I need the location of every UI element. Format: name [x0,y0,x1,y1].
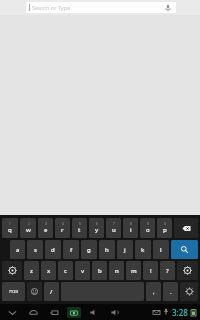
button[interactable]: g [81,240,97,259]
staticText: 6 [96,222,98,226]
button[interactable]: Shift [177,261,198,280]
staticText: i [130,226,132,234]
staticText: c [64,267,67,275]
button[interactable]: Home [27,306,40,318]
staticText: x [47,267,51,275]
button[interactable]: Settings [180,282,198,301]
staticText: k [141,246,145,254]
button[interactable]: Backspace [174,218,198,238]
staticText: n [115,267,119,275]
button[interactable]: 5 [72,218,87,238]
button[interactable]: 7 [106,218,121,238]
button[interactable]: Back [6,306,19,318]
button[interactable]: c [58,261,73,280]
staticText: , [153,288,155,296]
staticText: Search or Type [32,4,71,11]
button[interactable]: 2 [20,218,36,238]
button[interactable]: a [10,240,25,259]
staticText: 0 [164,222,166,226]
staticText: y [95,226,99,234]
button[interactable]: l [153,240,169,259]
button[interactable]: 0 [157,218,172,238]
button[interactable]: 9 [140,218,155,238]
staticText: v [81,267,85,275]
button[interactable]: Screenshot [67,307,81,318]
staticText: 9 [147,222,149,226]
staticText: ?123 [9,289,19,295]
staticText: 4 [62,222,64,226]
button[interactable]: ?123 [2,282,25,301]
button[interactable]: / [44,282,59,301]
button[interactable]: , [146,282,161,301]
button[interactable]: Voice search [162,2,173,13]
button[interactable]: h [99,240,115,259]
staticText: j [124,246,126,254]
staticText: l [160,246,162,254]
staticText: t [78,226,81,234]
button[interactable]: x [41,261,56,280]
staticText: q [8,226,12,234]
button[interactable]: v [75,261,90,280]
button[interactable]: Volume up [108,306,121,318]
button[interactable]: Search [171,240,198,259]
staticText: m [131,267,137,275]
staticText: 3:28 [172,307,188,318]
staticText: d [51,246,55,254]
button[interactable]: Recents [48,306,61,318]
button[interactable]: k [135,240,151,259]
staticText: s [34,246,37,254]
staticText: f [70,246,73,254]
button[interactable]: s [27,240,43,259]
staticText: h [105,246,109,254]
button[interactable]: Shift [2,261,22,280]
button[interactable]: n [109,261,124,280]
button[interactable]: d [45,240,61,259]
staticText: ? [166,267,169,275]
button[interactable]: ! [143,261,158,280]
staticText: 1 [9,222,11,226]
staticText: o [146,226,150,234]
staticText: 7 [113,222,115,226]
staticText: ! [150,267,152,275]
staticText: 8 [130,222,132,226]
staticText: . [170,288,172,296]
button[interactable]: Emoji [27,282,42,301]
button[interactable]: f [63,240,79,259]
button[interactable]: j [117,240,133,259]
staticText: 3 [45,222,47,226]
button[interactable]: 6 [89,218,104,238]
button[interactable]: . [163,282,178,301]
button[interactable]: b [92,261,107,280]
staticText: g [87,246,91,254]
button[interactable]: z [24,261,39,280]
staticText: a [16,246,20,254]
staticText: / [50,288,53,296]
staticText: u [112,226,116,234]
button[interactable]: ? [160,261,175,280]
button[interactable]: Volume down [87,306,100,318]
staticText: w [26,226,31,234]
button[interactable]: m [126,261,141,280]
button[interactable]: 8 [123,218,138,238]
button[interactable]: Search or Type [26,2,176,13]
staticText: r [61,226,64,234]
staticText: 2 [28,222,30,226]
button[interactable]: 1 [2,218,18,238]
staticText: b [98,267,102,275]
staticText: 5 [79,222,81,226]
staticText: z [30,267,33,275]
button[interactable]: 3 [38,218,53,238]
staticText: e [44,226,48,234]
button[interactable]: 4 [55,218,70,238]
staticText: p [163,226,167,234]
